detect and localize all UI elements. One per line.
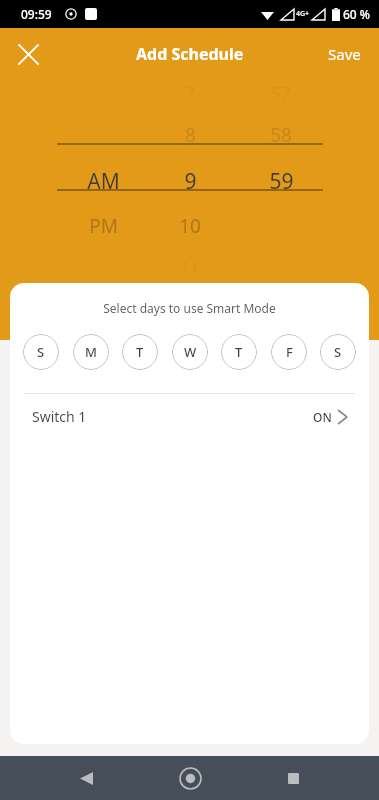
button[interactable]: Back	[66, 758, 106, 798]
staticText: 58	[270, 122, 292, 148]
staticText: Add Schedule	[136, 43, 244, 65]
button[interactable]: W	[172, 334, 208, 370]
staticText: Save	[328, 44, 361, 64]
button[interactable]: M	[73, 334, 109, 370]
staticText: 59	[269, 167, 294, 196]
button[interactable]: Recent apps	[273, 758, 313, 798]
staticText: Select days to use Smart Mode	[10, 300, 369, 316]
staticText: S	[334, 343, 342, 361]
staticText: W	[184, 343, 197, 361]
staticText: M	[85, 343, 97, 361]
staticText: ON	[313, 409, 332, 425]
button[interactable]: T	[122, 334, 158, 370]
button[interactable]: S	[23, 334, 59, 370]
staticText: T	[136, 343, 144, 361]
staticText: 09:59	[21, 6, 52, 22]
button[interactable]: Save	[310, 32, 379, 76]
staticText: 10	[179, 213, 201, 239]
staticText: 57	[271, 81, 291, 104]
button[interactable]: Switch 1	[10, 394, 369, 439]
staticText: PM	[89, 213, 118, 239]
staticText: 9	[184, 167, 197, 196]
staticText: T	[235, 343, 243, 361]
button[interactable]: F	[271, 334, 307, 370]
staticText: AM	[87, 167, 120, 196]
staticText: 8	[185, 122, 196, 148]
staticText: 4G+	[296, 9, 310, 19]
staticText: F	[286, 343, 293, 361]
button[interactable]: S	[320, 334, 356, 370]
staticText: 60 %	[343, 6, 371, 22]
staticText: S	[37, 343, 45, 361]
button[interactable]: T	[221, 334, 257, 370]
staticText: Switch 1	[32, 407, 87, 426]
button[interactable]: Home	[170, 758, 210, 798]
button[interactable]: Close	[6, 32, 50, 76]
